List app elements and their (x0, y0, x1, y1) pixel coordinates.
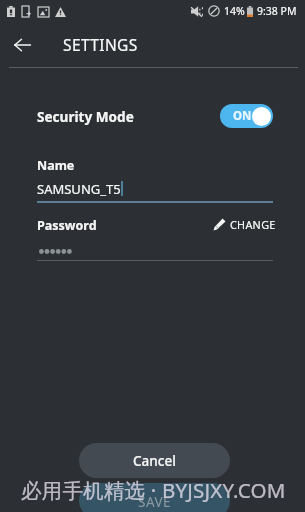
staticText: SAMSUNG_T5 (37, 180, 121, 198)
staticText: 14% (224, 4, 245, 18)
button[interactable]: Security Mode toggle (220, 104, 273, 128)
staticText: CHANGE (230, 217, 276, 232)
button[interactable]: Cancel (79, 443, 230, 478)
staticText: Name (37, 157, 75, 174)
button[interactable]: CHANGE (213, 216, 276, 232)
staticText: 必用手机精选 · BYJSJXY.COM (21, 476, 286, 504)
button[interactable]: Back (4, 27, 40, 63)
staticText: Password (37, 217, 97, 234)
button[interactable]: SAVE (79, 483, 230, 512)
staticText: Security Mode (37, 107, 134, 126)
staticText: 9:38 PM (257, 4, 297, 18)
staticText: ON (233, 108, 252, 124)
staticText: SETTINGS (63, 34, 138, 55)
staticText: Cancel (133, 452, 176, 470)
staticText: SAVE (138, 493, 172, 511)
